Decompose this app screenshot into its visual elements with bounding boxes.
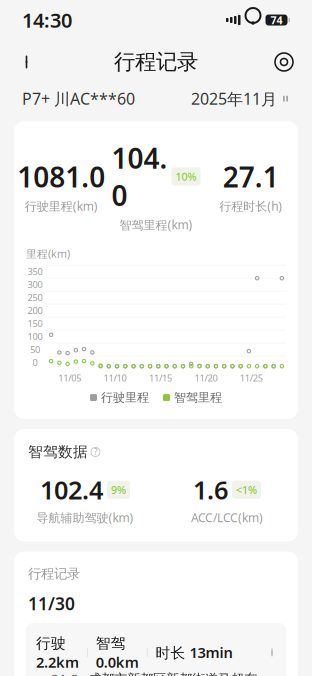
staticText: 行程记录: [114, 49, 198, 75]
staticText: 1081.0: [17, 158, 105, 195]
staticText: 里程(km): [26, 247, 70, 261]
staticText: 11/15: [149, 372, 172, 384]
staticText: 200: [27, 304, 42, 316]
staticText: 行驶里程: [101, 390, 149, 405]
staticText: 行驶 2.2km: [36, 633, 79, 672]
staticText: 74: [270, 13, 282, 27]
staticText: 50: [30, 343, 40, 355]
staticText: 102.4: [40, 473, 103, 506]
staticText: ACC/LCC(km): [191, 510, 263, 525]
staticText: 11/30: [28, 592, 75, 615]
staticText: 时长 13min: [156, 643, 233, 662]
staticText: 行程时长(h): [219, 198, 282, 214]
staticText: 300: [27, 278, 42, 290]
staticText: ?: [94, 447, 97, 457]
staticText: 250: [27, 291, 42, 303]
button[interactable]: 返回: [8, 42, 48, 82]
staticText: 100: [27, 330, 42, 342]
staticText: 350: [27, 265, 42, 277]
staticText: 27.1: [223, 158, 279, 195]
staticText: 11/20: [194, 372, 217, 384]
staticText: 导航辅助驾驶(km): [36, 510, 133, 525]
button[interactable]: 设置: [264, 42, 304, 82]
staticText: 10%: [175, 169, 196, 184]
staticText: 150: [27, 317, 42, 329]
staticText: 21:21: [51, 670, 79, 676]
staticText: 行程记录: [28, 565, 80, 582]
staticText: 14:30: [22, 7, 72, 33]
staticText: 智驾 0.0km: [96, 633, 139, 672]
staticText: 成都市新都区新都街道马超东路: [88, 671, 257, 676]
staticText: <1%: [236, 483, 257, 497]
staticText: P7+ 川AC***60: [22, 88, 135, 109]
staticText: 智驾里程(km): [119, 217, 192, 233]
staticText: 行驶里程(km): [25, 198, 98, 214]
button[interactable]: 2025年11月: [191, 88, 290, 109]
staticText: 11/25: [240, 372, 263, 384]
staticText: 智驾数据: [28, 443, 88, 461]
staticText: 9%: [111, 483, 126, 497]
button[interactable]: 行驶 2.2km: [26, 623, 286, 676]
staticText: 11/05: [58, 372, 81, 384]
staticText: 11/10: [104, 372, 127, 384]
staticText: 2025年11月: [191, 88, 277, 109]
staticText: 1.6: [193, 473, 228, 506]
staticText: 智驾里程: [174, 390, 222, 405]
staticText: 104.0: [111, 139, 167, 214]
staticText: 0: [32, 356, 37, 368]
